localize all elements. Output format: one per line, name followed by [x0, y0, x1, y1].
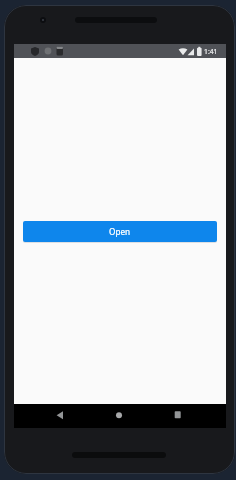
- staticText: 1:41: [204, 47, 218, 56]
- button[interactable]: [166, 404, 190, 428]
- button[interactable]: [48, 404, 72, 428]
- staticText: Open: [109, 226, 131, 237]
- button[interactable]: Open: [23, 221, 217, 242]
- button[interactable]: [107, 404, 131, 428]
